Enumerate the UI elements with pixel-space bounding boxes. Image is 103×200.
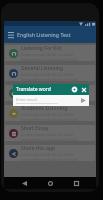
button[interactable]: Menu [5,29,16,40]
staticText: Share this app [21,145,56,152]
button[interactable]: Share this app [5,145,95,161]
staticText: Lorem ipsum dolor sit amet consectetur a… [21,72,92,81]
staticText: Lorem ipsum dolor sit amet consectetur a… [21,92,92,101]
staticText: Lorem ipsum dolor sit amet consectetur a… [21,152,92,161]
button[interactable]: Translate [79,96,88,105]
button[interactable]: Daily Listening [5,85,95,101]
button[interactable]: Recents [70,177,82,189]
staticText: Lorem ipsum dolor sit amet consectetur a… [21,132,92,141]
button[interactable]: Listening For Kid [5,45,95,61]
button[interactable]: Close [79,85,88,94]
staticText: Lorem ipsum dolor sit amet consectetur a… [21,52,92,61]
button[interactable]: Settings [70,85,79,94]
staticText: English Listening Test [17,31,71,38]
button[interactable]: Home [44,177,56,189]
staticText: Daily Listening [21,85,57,92]
staticText: Listening For Kid [21,45,61,52]
staticText: General Listening [21,65,63,72]
staticText: Lorem ipsum dolor sit amet consectetur a… [21,112,92,121]
button[interactable]: General Listening [5,65,95,81]
button[interactable]: Back [18,177,30,189]
button[interactable]: Translate word [13,84,89,95]
staticText: Academic Listening [21,105,68,112]
staticText: Short Essay [21,125,49,132]
button[interactable]: Academic Listening [5,105,95,121]
button[interactable]: Short Essay [5,125,95,141]
staticText: Enter word [16,97,37,102]
staticText: Translate word [16,86,51,93]
